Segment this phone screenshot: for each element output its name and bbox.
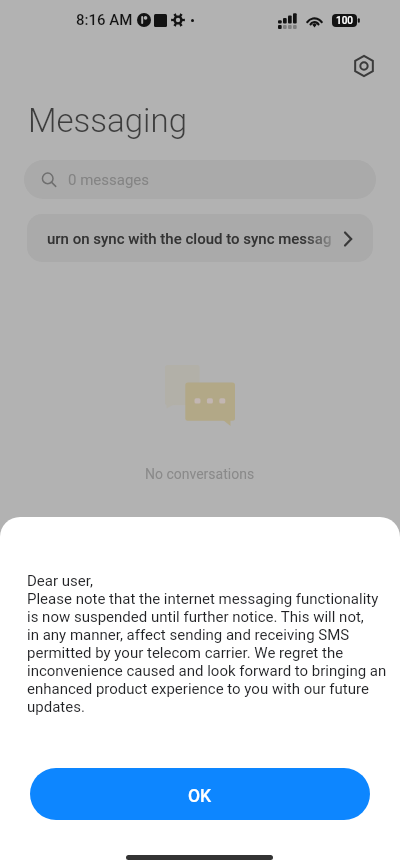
staticText: urn on sync with the cloud to sync messa…: [47, 230, 332, 248]
button[interactable]: OK: [30, 768, 370, 820]
staticText: Dear user, Please note that the internet…: [27, 572, 392, 716]
staticText: 100: [336, 15, 354, 27]
staticText: No conversations: [145, 466, 255, 482]
button[interactable]: urn on sync with the cloud to sync messa…: [27, 214, 373, 262]
button[interactable]: 0 messages: [24, 160, 376, 199]
staticText: 0 messages: [68, 171, 150, 189]
staticText: OK: [188, 786, 212, 807]
button[interactable]: Settings: [344, 46, 384, 86]
staticText: Messaging: [28, 101, 187, 140]
staticText: 8:16 AM: [76, 11, 133, 29]
